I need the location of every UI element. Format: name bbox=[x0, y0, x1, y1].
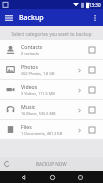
button[interactable]: Photos bbox=[0, 60, 103, 79]
button[interactable]: Back bbox=[17, 171, 29, 183]
staticText: Select categories you want to backup bbox=[11, 31, 92, 37]
staticText: Contacts bbox=[21, 43, 43, 50]
staticText: 262 Photos, 1.8 GB bbox=[21, 71, 55, 76]
staticText: 16 Music, 535.6 MB bbox=[21, 111, 56, 116]
button[interactable]: Select Photos bbox=[87, 65, 97, 75]
button[interactable]: Music bbox=[0, 100, 103, 119]
button[interactable]: Select Contacts bbox=[87, 45, 97, 55]
button[interactable]: Videos bbox=[0, 80, 103, 99]
button[interactable]: Open Files bbox=[74, 125, 84, 135]
staticText: Videos bbox=[21, 83, 38, 90]
staticText: 13:30 bbox=[89, 2, 101, 8]
staticText: Photos bbox=[21, 63, 38, 70]
button[interactable]: Open Music bbox=[74, 105, 84, 115]
button[interactable]: Menu bbox=[0, 9, 17, 26]
button[interactable]: Select Files bbox=[87, 125, 97, 135]
button[interactable]: BACKUP NOW bbox=[14, 157, 89, 171]
staticText: Files bbox=[21, 123, 32, 130]
staticText: 0 contacts bbox=[21, 51, 40, 56]
button[interactable]: Files bbox=[0, 120, 103, 139]
button[interactable]: Select Music bbox=[87, 105, 97, 115]
button[interactable]: Contacts bbox=[0, 40, 103, 59]
button[interactable]: More options bbox=[86, 9, 103, 26]
staticText: 3 Videos, 111.5 MB bbox=[21, 91, 55, 96]
staticText: 1 Documents, 481.2 KB bbox=[21, 131, 63, 136]
staticText: Backup bbox=[19, 13, 44, 23]
button[interactable]: Home bbox=[46, 171, 58, 183]
button[interactable]: Refresh bbox=[0, 157, 14, 171]
button[interactable]: Recents bbox=[74, 171, 86, 183]
button[interactable]: Open Photos bbox=[74, 65, 84, 75]
button[interactable]: Select Videos bbox=[87, 85, 97, 95]
button[interactable]: Open Videos bbox=[74, 85, 84, 95]
staticText: BACKUP NOW bbox=[36, 161, 67, 167]
staticText: Music bbox=[21, 103, 36, 110]
